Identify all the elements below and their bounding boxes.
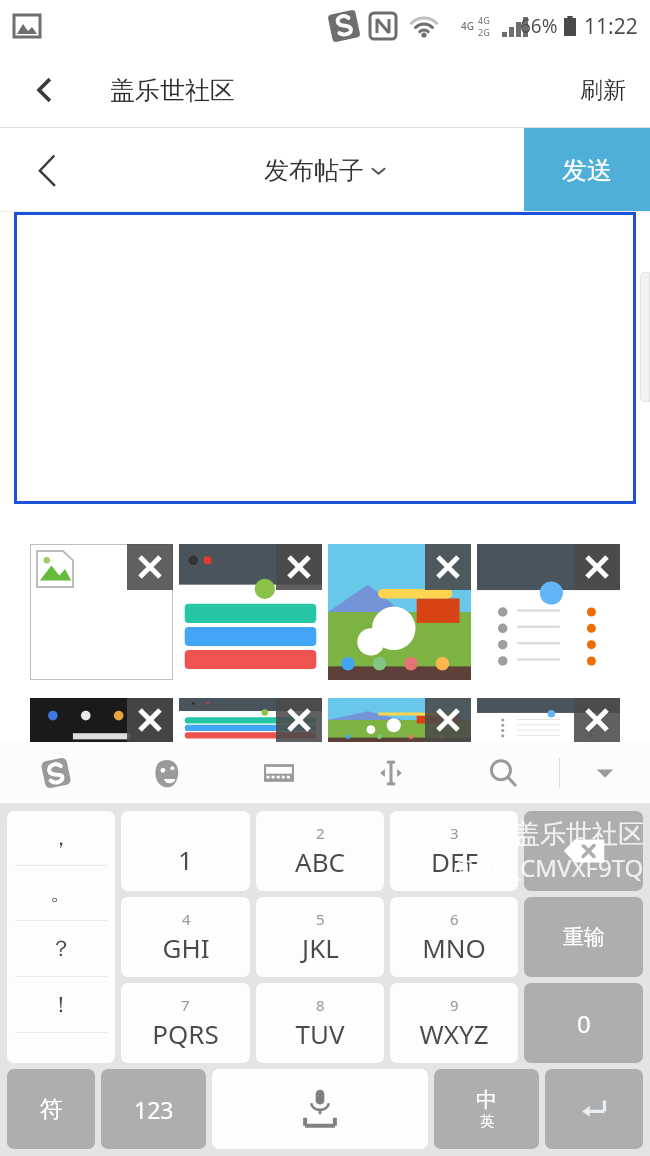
staticText: 重输 (563, 924, 605, 950)
staticText: DEF (431, 844, 478, 879)
button[interactable]: 0 (524, 983, 643, 1063)
button[interactable]: Move cursor (335, 742, 447, 804)
button[interactable]: 7 (121, 983, 250, 1063)
staticText: GHI (162, 930, 210, 965)
staticText: 4G (461, 19, 474, 33)
staticText: @GG_CMVXF9TQ (453, 851, 644, 884)
staticText: 。 (50, 879, 72, 907)
button[interactable]: 4 (121, 897, 250, 977)
staticText: WXYZ (419, 1016, 489, 1051)
staticText: 123 (134, 1094, 174, 1125)
staticText: 发布帖子 (264, 155, 364, 186)
button[interactable]: Post body text field (14, 212, 636, 504)
button[interactable]: ， (7, 811, 115, 1063)
other: Backspace (561, 836, 607, 866)
button[interactable]: 符 (7, 1069, 95, 1149)
button[interactable]: 2 (256, 811, 384, 891)
staticText: ， (50, 824, 72, 852)
staticText: MNO (422, 930, 486, 965)
staticText: ABC (295, 844, 345, 879)
staticText: 刷新 (580, 76, 626, 105)
staticText: 5 (316, 909, 325, 929)
button[interactable]: 刷新 (556, 52, 650, 128)
staticText: 2G (478, 26, 490, 38)
button[interactable]: Remove image (276, 544, 322, 590)
staticText: 66% (520, 13, 558, 39)
staticText: 7 (181, 995, 190, 1015)
staticText: 英 (480, 1113, 494, 1131)
button[interactable]: Remove image (276, 698, 322, 742)
button[interactable]: Remove image (127, 698, 173, 742)
staticText: 8 (316, 995, 325, 1015)
staticText: 1 (178, 842, 193, 877)
staticText: 4 (182, 909, 191, 929)
button[interactable]: Backspace (524, 811, 643, 891)
button[interactable]: Remove image (425, 698, 471, 742)
staticText: 发送 (562, 155, 612, 186)
staticText: 中 (476, 1087, 497, 1113)
button[interactable]: 1 (121, 811, 250, 891)
staticText: PQRS (152, 1016, 219, 1051)
button[interactable]: Sogou input (0, 742, 111, 804)
button[interactable]: Remove image (425, 544, 471, 590)
staticText: 0 (577, 1007, 591, 1040)
staticText: 符 (40, 1095, 63, 1124)
button[interactable]: Hide keyboard (560, 742, 650, 804)
staticText: TUV (295, 1016, 345, 1051)
button[interactable]: Remove image (127, 544, 173, 590)
button[interactable]: Remove image (574, 698, 620, 742)
staticText: 2 (316, 823, 325, 843)
button[interactable]: 3 (390, 811, 518, 891)
button[interactable] (545, 1069, 643, 1149)
button[interactable] (30, 544, 173, 680)
staticText: 4G (478, 14, 490, 26)
button[interactable]: Back (0, 52, 90, 128)
staticText: 6 (450, 909, 459, 929)
staticText: ！ (50, 991, 72, 1019)
button[interactable]: 发送 (524, 128, 650, 212)
button[interactable]: Emoji (111, 742, 223, 804)
button[interactable]: 8 (256, 983, 384, 1063)
button[interactable]: Keyboard layout (223, 742, 335, 804)
button[interactable]: Search (447, 742, 559, 804)
button[interactable]: 6 (390, 897, 518, 977)
staticText: 11:22 (584, 12, 638, 41)
staticText: 盖乐世社区 (514, 818, 644, 851)
button[interactable]: Remove image (574, 544, 620, 590)
button[interactable]: Space, voice input (212, 1069, 428, 1149)
button[interactable]: 123 (101, 1069, 206, 1149)
button[interactable]: 重输 (524, 897, 643, 977)
staticText: 3 (450, 823, 459, 843)
staticText: JKL (302, 930, 339, 965)
button[interactable]: Back (0, 128, 96, 212)
staticText: ？ (50, 935, 72, 963)
button[interactable]: 5 (256, 897, 384, 977)
button[interactable]: 中 (434, 1069, 539, 1149)
button[interactable]: 9 (390, 983, 518, 1063)
staticText: 盖乐世社区 (110, 75, 235, 106)
staticText: 9 (450, 995, 459, 1015)
